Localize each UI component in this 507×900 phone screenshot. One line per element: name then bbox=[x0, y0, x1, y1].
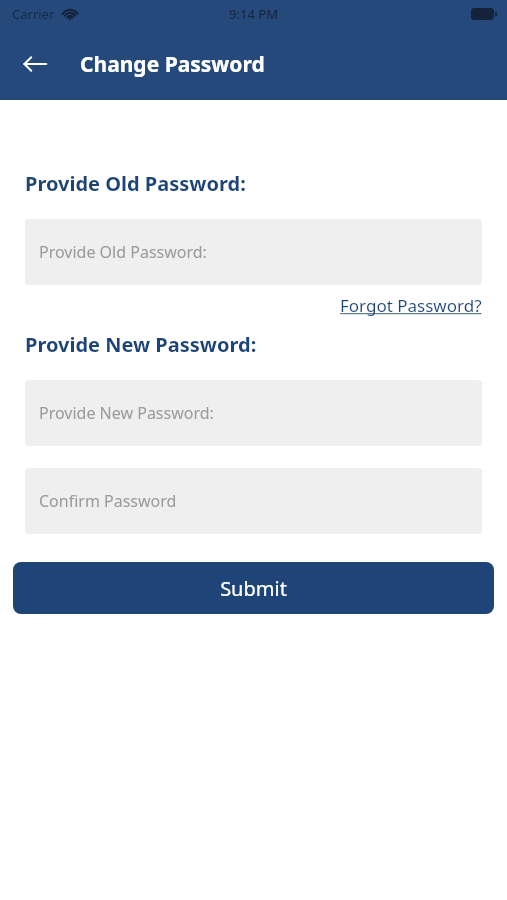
button[interactable]: Confirm Password bbox=[25, 468, 482, 534]
button[interactable]: Forgot Password? bbox=[340, 294, 482, 317]
staticText: Provide New Password: bbox=[39, 402, 214, 424]
staticText: Provide New Password: bbox=[25, 331, 257, 358]
button[interactable]: Provide Old Password: bbox=[25, 219, 482, 285]
button[interactable]: Provide New Password: bbox=[25, 380, 482, 446]
staticText: Forgot Password? bbox=[340, 294, 482, 317]
staticText: Provide Old Password: bbox=[39, 241, 207, 263]
staticText: Confirm Password bbox=[39, 490, 177, 512]
staticText: Submit bbox=[220, 575, 287, 602]
button[interactable]: Back bbox=[14, 43, 56, 85]
button[interactable]: Submit bbox=[13, 562, 494, 614]
staticText: Change Password bbox=[80, 50, 265, 79]
staticText: 9:14 PM bbox=[229, 5, 279, 23]
staticText: Provide Old Password: bbox=[25, 170, 246, 197]
staticText: Carrier bbox=[12, 5, 55, 23]
